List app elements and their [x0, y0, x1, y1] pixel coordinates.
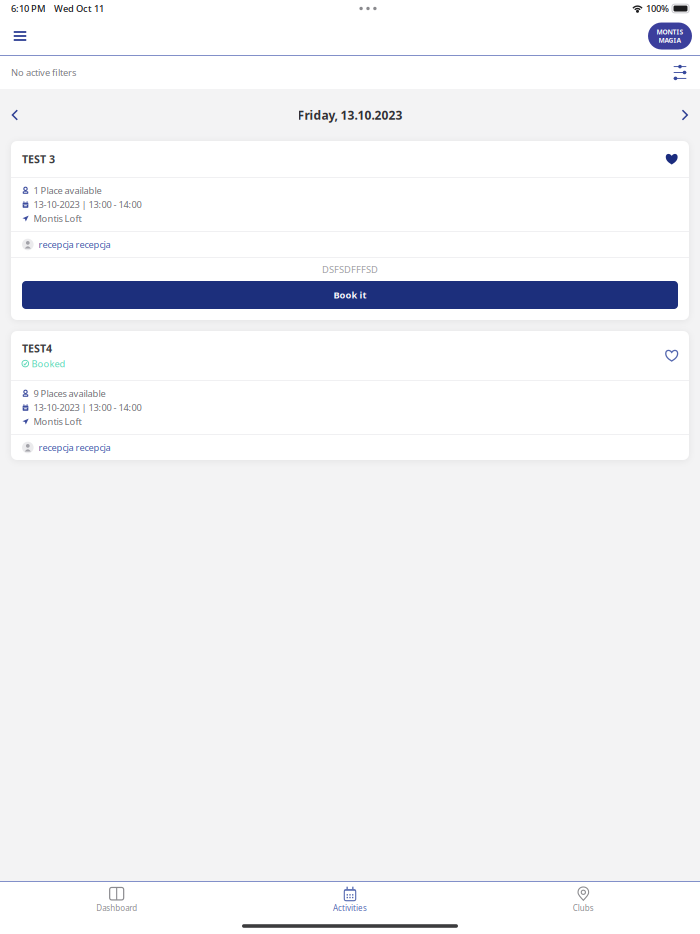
staticText: 6:10 PM [11, 2, 46, 15]
button[interactable]: recepcja recepcja [11, 232, 689, 257]
staticText: TEST 3 [22, 152, 55, 166]
staticText: 13-10-2023 | 13:00 - 14:00 [33, 401, 141, 414]
button[interactable]: Add to favourites [654, 343, 678, 367]
button[interactable]: Clubs [467, 882, 700, 918]
staticText: MAGIA [658, 36, 681, 45]
staticText: DSFSDFFFSD [322, 263, 378, 276]
button[interactable]: Montis Magia [648, 22, 692, 49]
button[interactable]: Menu [3, 18, 37, 54]
staticText: 100% [646, 2, 669, 15]
button[interactable]: recepcja recepcja [11, 435, 689, 460]
button[interactable]: Dashboard [0, 882, 233, 918]
staticText: 1 Place available [33, 184, 101, 197]
button[interactable]: Activities [233, 882, 467, 918]
staticText: Wed Oct 11 [54, 2, 104, 15]
staticText: Booked [32, 357, 66, 370]
button[interactable]: Book it [22, 281, 678, 309]
staticText: Friday, 13.10.2023 [297, 107, 402, 123]
button[interactable]: Previous day [3, 101, 27, 129]
staticText: 9 Places available [33, 387, 105, 400]
staticText: Clubs [573, 903, 594, 913]
staticText: Montis Loft [33, 212, 81, 225]
staticText: recepcja recepcja [39, 238, 111, 251]
button[interactable]: Next day [673, 101, 697, 129]
staticText: TEST4 [22, 341, 52, 355]
staticText: Montis Loft [33, 415, 81, 428]
staticText: Book it [333, 289, 366, 301]
staticText: No active filters [11, 66, 76, 79]
button[interactable]: Remove from favourites [654, 147, 678, 171]
staticText: Dashboard [96, 903, 137, 913]
staticText: recepcja recepcja [39, 441, 111, 454]
button[interactable]: Filters [667, 57, 693, 87]
staticText: 13-10-2023 | 13:00 - 14:00 [33, 198, 141, 211]
staticText: MONTIS [656, 27, 683, 36]
staticText: Activities [333, 903, 367, 913]
